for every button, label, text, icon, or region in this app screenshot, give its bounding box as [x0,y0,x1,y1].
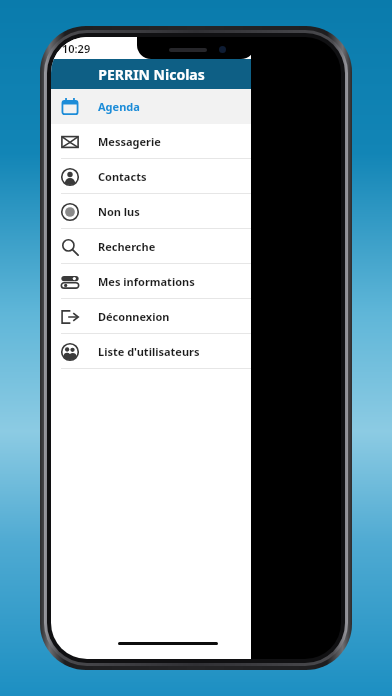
button[interactable]: Déconnexion [51,299,251,334]
staticText: Déconnexion [98,309,170,324]
button[interactable]: Messagerie [51,124,251,159]
staticText: Non lus [98,204,140,219]
staticText: Messagerie [98,134,161,149]
staticText: Mes informations [98,274,195,289]
staticText: PERRIN Nicolas [98,65,205,84]
staticText: 10:29 [62,41,91,56]
button[interactable]: Non lus [51,194,251,229]
staticText: Liste d'utilisateurs [98,344,200,359]
button[interactable]: Recherche [51,229,251,264]
button[interactable]: Contacts [51,159,251,194]
button[interactable]: Liste d'utilisateurs [51,334,251,369]
staticText: Contacts [98,169,147,184]
button[interactable]: Mes informations [51,264,251,299]
button[interactable]: Agenda [51,89,251,124]
staticText: Recherche [98,239,156,254]
button[interactable]: PERRIN Nicolas [51,59,251,89]
staticText: Agenda [98,99,140,114]
